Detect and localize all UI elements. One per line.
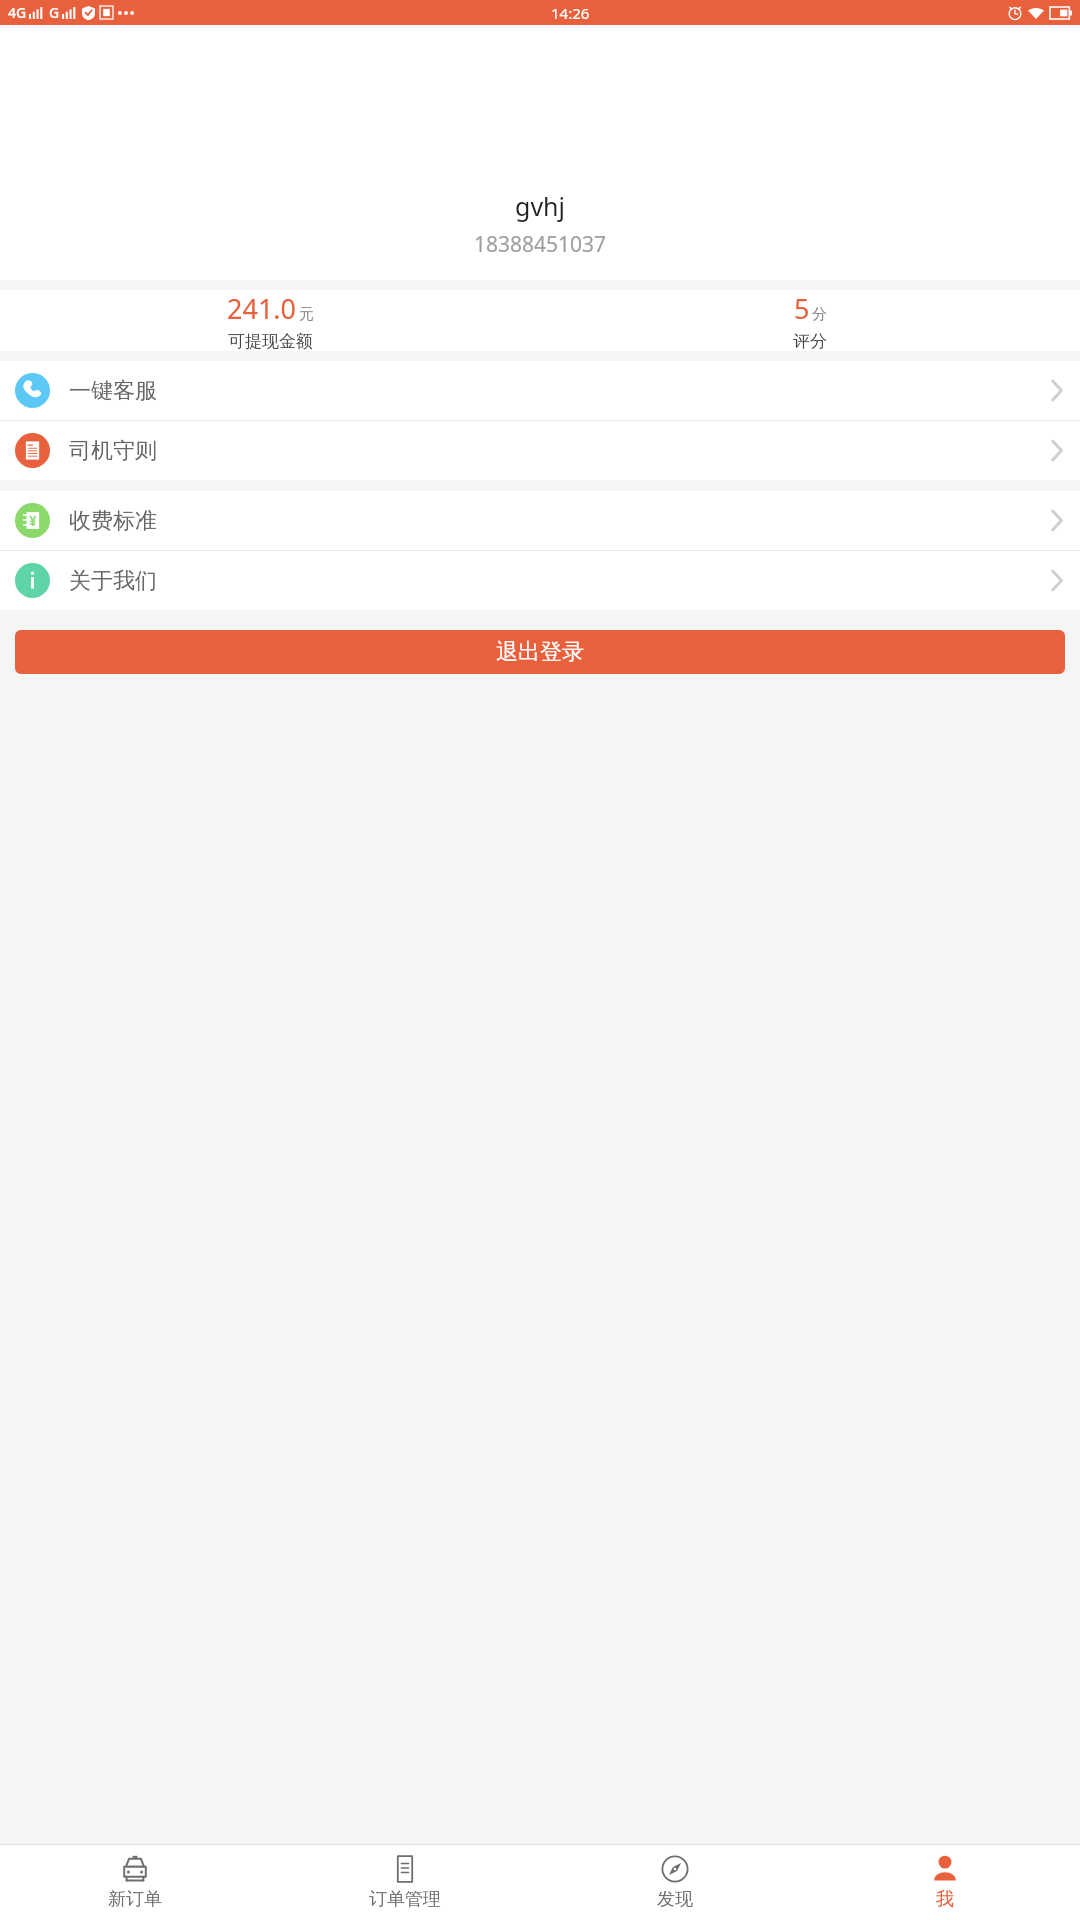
button[interactable]: Customer service xyxy=(0,361,1080,420)
button[interactable]: 我 xyxy=(810,1845,1080,1920)
button[interactable]: 退出登录 xyxy=(15,630,1065,674)
staticText: 新订单 xyxy=(108,1888,162,1911)
staticText: 我 xyxy=(936,1888,954,1911)
button[interactable]: 发现 xyxy=(540,1845,810,1920)
other: About us xyxy=(15,563,50,598)
staticText: gvhj xyxy=(515,189,565,223)
staticText: 发现 xyxy=(657,1888,693,1911)
staticText: G xyxy=(49,3,60,22)
staticText: 退出登录 xyxy=(496,638,584,666)
staticText: 订单管理 xyxy=(369,1888,441,1911)
other: Customer service xyxy=(15,373,50,408)
button[interactable]: Fee standard xyxy=(0,491,1080,550)
button[interactable]: Driver rules xyxy=(0,421,1080,480)
staticText: 18388451037 xyxy=(474,230,607,259)
other: Driver rules xyxy=(15,433,50,468)
staticText: 司机守则 xyxy=(69,437,157,465)
staticText: 一键客服 xyxy=(69,377,157,405)
staticText: 分 xyxy=(812,305,827,324)
staticText: 可提现金额 xyxy=(228,331,313,351)
staticText: 关于我们 xyxy=(69,567,157,595)
staticText: 14:26 xyxy=(551,3,590,23)
staticText: 元 xyxy=(299,305,314,324)
staticText: 4G xyxy=(8,3,27,22)
other: Fee standard xyxy=(15,503,50,538)
staticText: 241.0 xyxy=(227,290,297,327)
button[interactable]: 订单管理 xyxy=(270,1845,540,1920)
staticText: 收费标准 xyxy=(69,507,157,535)
staticText: 5 xyxy=(794,290,810,327)
button[interactable]: About us xyxy=(0,551,1080,610)
staticText: 评分 xyxy=(793,331,827,351)
button[interactable]: 新订单 xyxy=(0,1845,270,1920)
